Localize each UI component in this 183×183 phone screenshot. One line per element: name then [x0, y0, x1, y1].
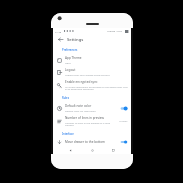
- staticText: Logout: [65, 68, 76, 72]
- staticText: Rules: [62, 96, 69, 100]
- button[interactable]: Back: [56, 35, 65, 44]
- staticText: Default color for new notes: [65, 109, 96, 112]
- button[interactable]: Move drawer to the bottom: [53, 138, 131, 146]
- staticText: Settings: [67, 37, 84, 43]
- staticText: Preferences: [62, 48, 78, 52]
- button[interactable]: Recents: [110, 147, 117, 154]
- staticText: All crypto operations performed on the d…: [65, 85, 128, 91]
- button[interactable]: App Theme: [53, 54, 131, 66]
- button[interactable]: Back: [67, 147, 74, 154]
- staticText: Android • Wi-Fi: [107, 30, 123, 33]
- button[interactable]: Default note color: [53, 102, 131, 114]
- button[interactable]: Logout: [53, 66, 131, 78]
- staticText: Default note color: [65, 104, 92, 108]
- staticText: Number of lines in preview: [65, 116, 104, 120]
- staticText: 11:10: [55, 30, 62, 33]
- staticText: Logout from your Google Drive account: [65, 73, 110, 76]
- staticText: Number of lines in the preview of a note…: [65, 121, 118, 127]
- staticText: Interface: [62, 132, 74, 136]
- button[interactable]: Home: [89, 147, 96, 154]
- staticText: Move drawer to the bottom: [65, 140, 105, 144]
- button[interactable]: Toggle: [120, 140, 128, 144]
- button[interactable]: Enable encrypted sync: [53, 78, 131, 93]
- button[interactable]: Toggle: [120, 106, 128, 111]
- button[interactable]: Number of lines in preview: [53, 114, 131, 129]
- staticText: Enable encrypted sync: [65, 80, 98, 84]
- staticText: 10 lines: [119, 120, 128, 123]
- staticText: Light: [65, 61, 71, 64]
- staticText: App Theme: [65, 56, 82, 60]
